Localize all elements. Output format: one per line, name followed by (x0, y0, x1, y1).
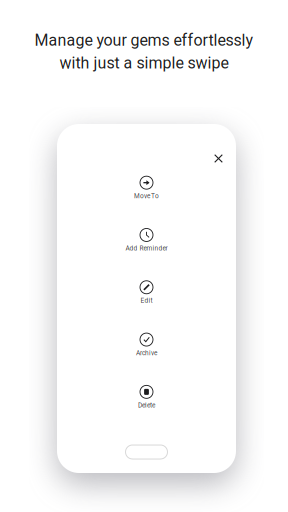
staticText: with just a simple swipe (59, 54, 228, 73)
button[interactable]: Home (125, 445, 167, 459)
staticText: Move To (134, 192, 159, 200)
button[interactable]: Archive (86, 331, 206, 358)
button[interactable]: Add Reminder (86, 227, 206, 254)
button[interactable]: Delete (86, 384, 206, 411)
staticText: Edit (140, 297, 152, 304)
staticText: Add Reminder (125, 244, 167, 252)
staticText: Manage your gems effortlessly (34, 31, 253, 50)
button[interactable]: Edit (86, 279, 206, 306)
staticText: Archive (136, 349, 157, 357)
button[interactable]: Move To (86, 174, 206, 201)
staticText: Delete (138, 401, 155, 409)
button[interactable]: Close (209, 149, 228, 168)
